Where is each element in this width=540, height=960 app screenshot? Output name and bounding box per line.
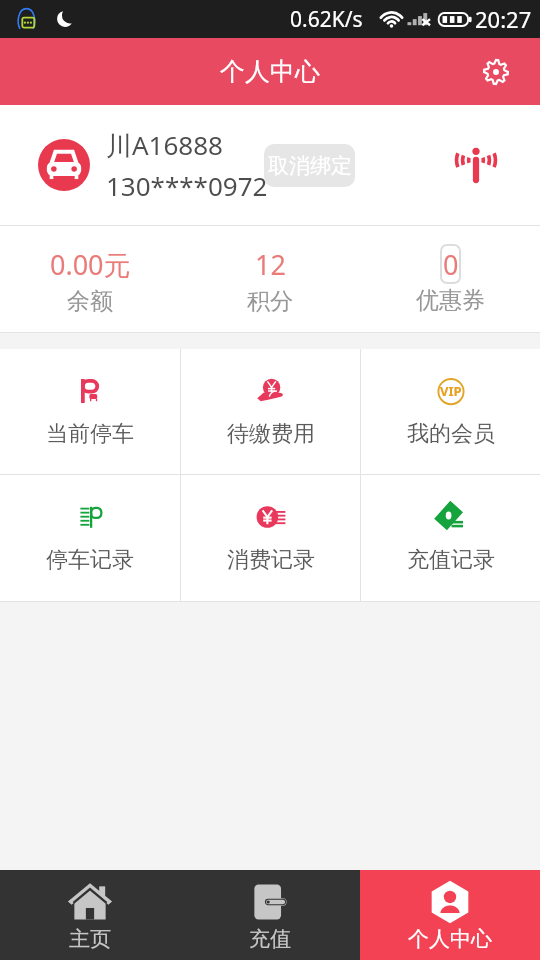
button[interactable]: VIP xyxy=(361,349,540,474)
button[interactable]: 主页 xyxy=(0,870,180,960)
staticText: 取消绑定 xyxy=(268,153,352,179)
staticText: 充值记录 xyxy=(407,546,495,574)
staticText: 待缴费用 xyxy=(227,420,315,448)
staticText: 消费记录 xyxy=(227,546,315,574)
staticText: 停车记录 xyxy=(46,546,134,574)
staticText: 余额 xyxy=(67,287,113,316)
button[interactable]: 取消绑定 xyxy=(264,144,355,187)
button[interactable]: 停车记录 xyxy=(0,475,180,601)
button[interactable]: 个人中心 xyxy=(360,870,540,960)
staticText: 当前停车 xyxy=(46,420,134,448)
button[interactable]: 0.00元 xyxy=(0,243,180,316)
button[interactable]: Settings xyxy=(476,52,516,92)
staticText: 0.00元 xyxy=(50,246,131,283)
button[interactable]: 充值 xyxy=(180,870,360,960)
staticText: 0 xyxy=(443,246,459,283)
button[interactable]: 12 xyxy=(180,243,360,316)
staticText: 充值 xyxy=(249,926,291,952)
button[interactable]: 消费记录 xyxy=(181,475,360,601)
staticText: VIP xyxy=(440,382,462,400)
staticText: 130****0972 xyxy=(106,168,268,203)
staticText: 主页 xyxy=(69,926,111,952)
staticText: 12 xyxy=(255,246,286,283)
staticText: 积分 xyxy=(247,287,293,316)
button[interactable]: 当前停车 xyxy=(0,349,180,474)
button[interactable]: 0 xyxy=(360,244,540,315)
staticText: 优惠券 xyxy=(416,286,485,315)
staticText: 个人中心 xyxy=(220,56,320,87)
staticText: 20:27 xyxy=(475,4,532,34)
staticText: 我的会员 xyxy=(407,420,495,448)
staticText: 川A16888 xyxy=(106,127,223,163)
staticText: 0.62K/s xyxy=(290,5,363,34)
button[interactable]: 充值记录 xyxy=(361,475,540,601)
button[interactable]: 待缴费用 xyxy=(181,349,360,474)
staticText: 个人中心 xyxy=(408,926,492,952)
button[interactable]: Signal xyxy=(450,139,502,191)
